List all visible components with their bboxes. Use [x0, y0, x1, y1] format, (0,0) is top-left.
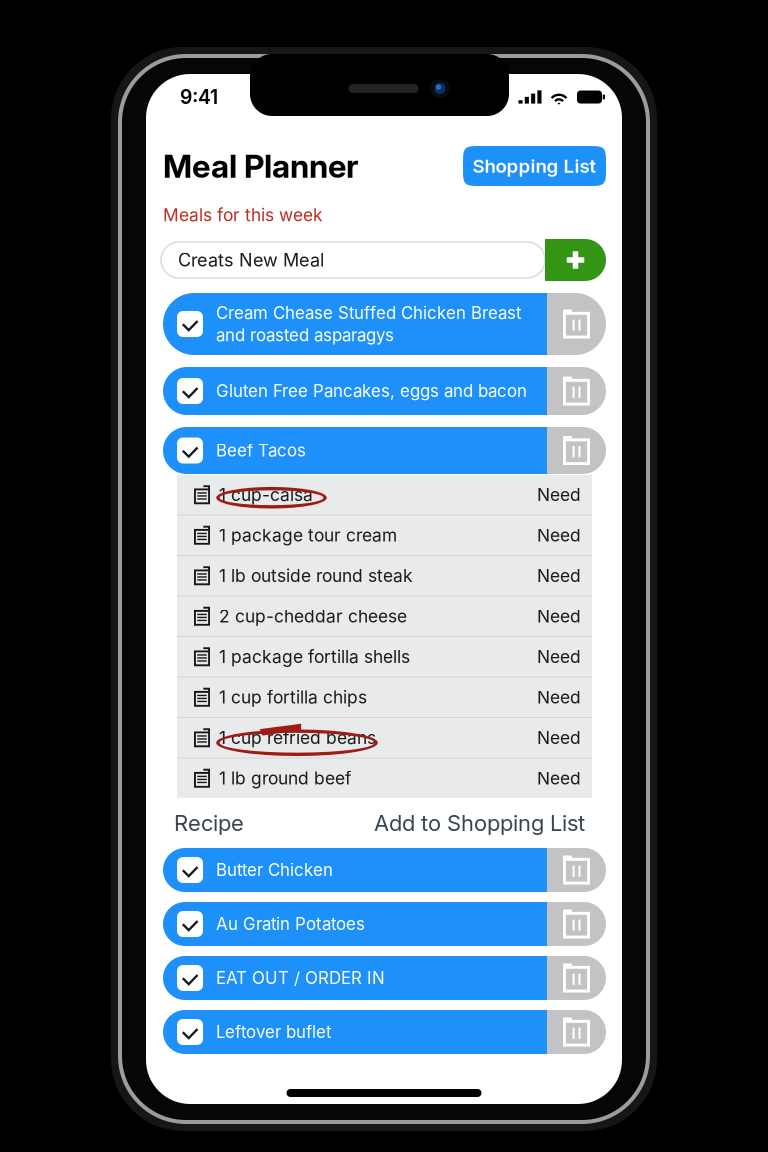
staticText: 2 cup-cheddar cheese [219, 606, 407, 627]
staticText: Need [537, 646, 581, 667]
staticText: 1 cup-calsa [219, 484, 313, 505]
button[interactable]: Leftover buflet [163, 1010, 606, 1054]
button[interactable]: Gluten Free Pancakes, eggs and bacon [163, 367, 606, 415]
staticText: Leftover buflet [216, 1022, 331, 1042]
staticText: 1 lb ground beef [219, 768, 351, 789]
staticText: EAT OUT / ORDER IN [216, 968, 385, 988]
staticText: 1 package fortilla shells [219, 646, 410, 667]
staticText: Beef Tacos [216, 440, 306, 461]
button[interactable]: 1 cup fortilla chips [177, 677, 592, 717]
staticText: 1 cup fortilla chips [219, 687, 367, 708]
staticText: Meals for this week [163, 204, 323, 225]
staticText: Cream Chease Stuffed Chicken Breast [216, 303, 521, 323]
staticText: Meal Planner [163, 147, 358, 185]
staticText: Recipe [174, 810, 244, 836]
staticText: Butter Chicken [216, 860, 333, 880]
button[interactable]: Add meal [545, 239, 606, 281]
button[interactable]: Shopping List [463, 146, 606, 186]
staticText: Need [537, 727, 581, 748]
staticText: 9:41 [180, 85, 218, 109]
staticText: Need [537, 768, 581, 789]
staticText: 1 package tour cream [219, 525, 397, 546]
staticText: 1 lb outside round steak [219, 565, 413, 586]
button[interactable]: Butter Chicken [163, 848, 606, 892]
staticText: Gluten Free Pancakes, eggs and bacon [216, 381, 527, 401]
button[interactable]: 1 lb outside round steak [177, 556, 592, 595]
button[interactable]: Au Gratin Potatoes [163, 902, 606, 946]
staticText: Creats New Meal [178, 249, 324, 271]
button[interactable]: 2 cup-cheddar cheese [177, 596, 592, 636]
button[interactable]: 1 package tour cream [177, 515, 592, 555]
staticText: Shopping List [472, 155, 596, 177]
staticText: Need [537, 606, 581, 627]
staticText: and roasted asparagys [216, 325, 394, 345]
button[interactable]: Beef Tacos [163, 427, 606, 474]
button[interactable]: 1 lb ground beef [177, 758, 592, 798]
staticText: Need [537, 484, 581, 505]
button[interactable]: EAT OUT / ORDER IN [163, 956, 606, 1000]
staticText: Au Gratin Potatoes [216, 914, 365, 934]
staticText: Need [537, 525, 581, 546]
staticText: Need [537, 565, 581, 586]
staticText: Need [537, 687, 581, 708]
button[interactable]: Cream Chease Stuffed Chicken Breast [163, 293, 606, 355]
button[interactable]: 1 cup-calsa [177, 475, 592, 514]
staticText: Add to Shopping List [374, 810, 585, 836]
button[interactable]: 1 cup refried beans [177, 718, 592, 757]
button[interactable]: 1 package fortilla shells [177, 637, 592, 676]
staticText: 1 cup refried beans [219, 727, 376, 748]
